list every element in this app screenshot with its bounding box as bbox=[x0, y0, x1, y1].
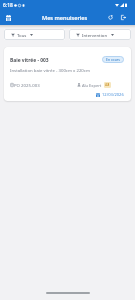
staticText: Mes menuiseries bbox=[42, 14, 88, 22]
staticText: Alu Expert bbox=[82, 83, 102, 88]
staticText: Tous bbox=[17, 32, 27, 38]
button[interactable]: Déconnexion bbox=[118, 12, 129, 23]
staticText: Baie vitrée - 003 bbox=[10, 57, 49, 64]
staticText: 4.8 bbox=[105, 83, 110, 87]
staticText: 6:18 bbox=[3, 2, 13, 9]
button[interactable]: Tous bbox=[4, 29, 65, 40]
staticText: 12/03/2026 bbox=[102, 92, 124, 98]
button[interactable]: Baie vitrée - 003 bbox=[4, 47, 131, 101]
staticText: Installation baie vitrée - 300cm x 220cm bbox=[10, 67, 90, 73]
button[interactable]: Agenda bbox=[3, 12, 14, 23]
button[interactable]: Intervention bbox=[69, 29, 131, 40]
staticText: Intervention bbox=[82, 32, 108, 38]
staticText: En cours bbox=[106, 57, 120, 62]
staticText: PO 2025-003 bbox=[14, 82, 40, 88]
button[interactable]: Actualiser bbox=[105, 12, 116, 23]
